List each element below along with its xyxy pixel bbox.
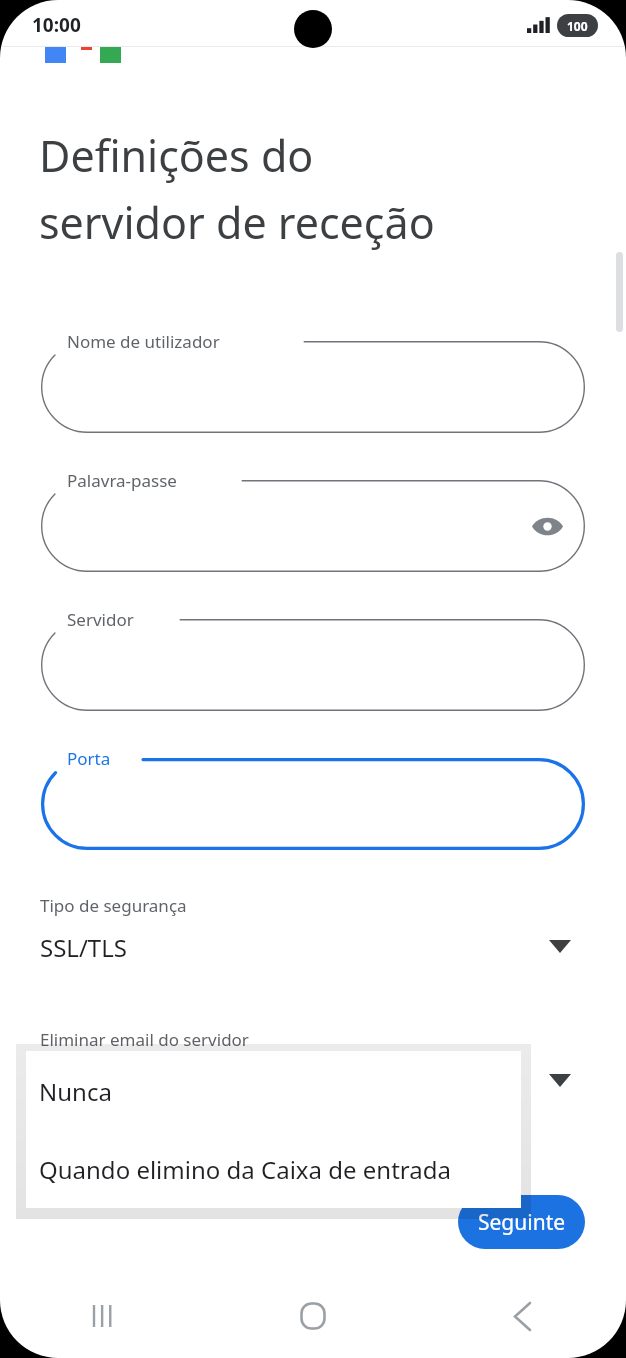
button[interactable]: Mostrar palavra-passe bbox=[525, 504, 569, 548]
staticText: Servidor bbox=[67, 608, 134, 631]
button[interactable]: Servidor bbox=[41, 619, 585, 711]
button[interactable]: Nome de utilizador bbox=[41, 341, 585, 433]
button[interactable]: Tipo de segurança bbox=[0, 891, 626, 983]
staticText: SSL/TLS bbox=[40, 931, 127, 964]
staticText: Porta bbox=[67, 747, 111, 770]
staticText: Quando elimino da Caixa de entrada bbox=[39, 1153, 451, 1186]
button[interactable]: Recents bbox=[0, 1274, 208, 1358]
button[interactable]: Nunca bbox=[26, 1051, 521, 1129]
staticText: Eliminar email do servidor bbox=[40, 1028, 249, 1051]
button[interactable]: Quando elimino da Caixa de entrada bbox=[26, 1129, 521, 1208]
button[interactable]: Porta bbox=[41, 758, 585, 850]
button[interactable]: Home bbox=[208, 1274, 417, 1358]
staticText: Seguinte bbox=[478, 1208, 566, 1237]
staticText: 100 bbox=[567, 18, 588, 34]
staticText: Tipo de segurança bbox=[40, 894, 187, 917]
staticText: Definições do servidor de receção bbox=[39, 126, 435, 251]
staticText: 10:00 bbox=[32, 12, 81, 38]
button[interactable]: Palavra-passe bbox=[41, 480, 585, 572]
button[interactable]: Back bbox=[417, 1274, 626, 1358]
button[interactable]: Seguinte bbox=[458, 1195, 585, 1249]
staticText: Palavra-passe bbox=[67, 469, 177, 492]
staticText: Nome de utilizador bbox=[67, 330, 220, 353]
button[interactable]: Eliminar email do servidor bbox=[0, 1025, 626, 1117]
staticText: Nunca bbox=[40, 1065, 113, 1098]
staticText: Nunca bbox=[39, 1075, 112, 1108]
